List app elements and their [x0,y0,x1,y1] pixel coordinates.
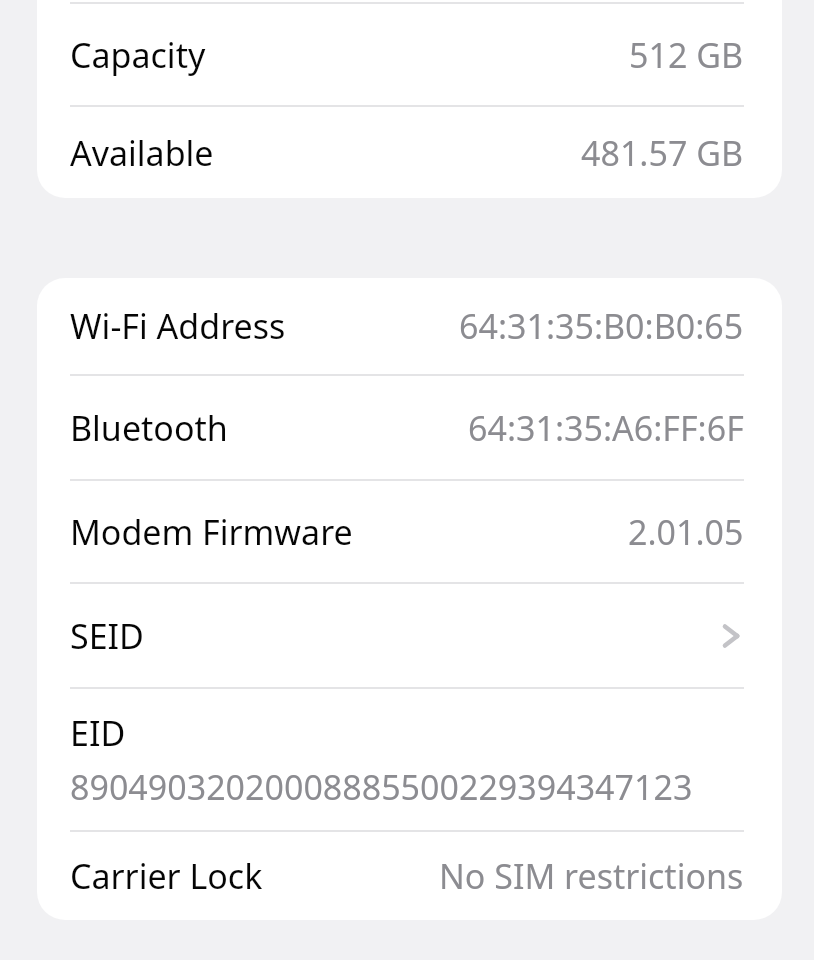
staticText: 481.57 GB [581,130,744,176]
staticText: Bluetooth [70,405,228,451]
button[interactable]: Wi-Fi Address [37,278,782,374]
button[interactable]: Available [37,107,782,198]
other: Open SEID [716,622,744,650]
staticText: Modem Firmware [70,509,353,555]
staticText: Capacity [70,32,206,78]
staticText: SEID [70,613,144,659]
staticText: 64:31:35:B0:B0:65 [459,303,744,349]
staticText: Wi-Fi Address [70,303,286,349]
staticText: EID [70,710,126,756]
staticText: 2.01.05 [628,509,744,555]
staticText: 512 GB [629,32,744,78]
staticText: Available [70,130,214,176]
staticText: 64:31:35:A6:FF:6F [468,405,744,451]
button[interactable]: Carrier Lock [37,832,782,920]
button[interactable]: EID [37,689,782,830]
staticText: Carrier Lock [70,853,263,899]
button[interactable]: SEID [37,584,782,687]
staticText: 89049032020008885500229394347123 [70,764,693,810]
staticText: No SIM restrictions [439,853,744,899]
button[interactable]: Modem Firmware [37,481,782,582]
button[interactable]: Capacity [37,4,782,105]
button[interactable]: Bluetooth [37,376,782,479]
